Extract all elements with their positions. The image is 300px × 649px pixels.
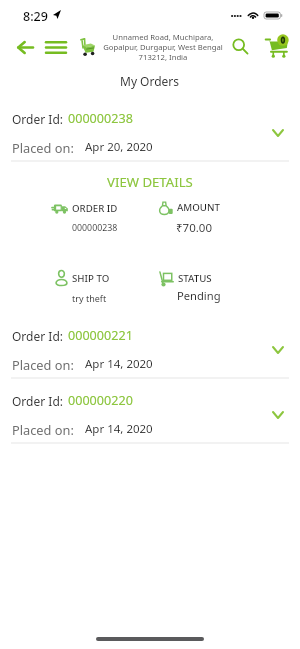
staticText: Apr 20, 2020 [85, 139, 153, 155]
button[interactable]: Unnamed Road, Muchipara, Gopalpur, Durga… [101, 32, 225, 62]
staticText: Apr 14, 2020 [85, 356, 153, 372]
staticText: 000000221 [68, 327, 133, 344]
staticText: Pending [177, 288, 221, 303]
staticText: 000000238 [68, 110, 133, 127]
staticText: Placed on: [12, 356, 74, 373]
staticText: AMOUNT [177, 201, 220, 214]
staticText: 000000238 [72, 222, 118, 234]
button[interactable]: Cart [261, 31, 291, 61]
button[interactable]: Search [228, 34, 252, 58]
staticText: Placed on: [12, 139, 74, 156]
staticText: STATUS [178, 272, 212, 285]
button[interactable]: VIEW DETAILS [0, 172, 300, 192]
staticText: 000000220 [68, 392, 133, 409]
button[interactable]: Back [12, 34, 38, 60]
staticText: try theft [72, 292, 107, 304]
button[interactable]: Order Id: [0, 108, 300, 156]
button[interactable]: Order Id: [0, 325, 300, 373]
staticText: My Orders [120, 73, 180, 89]
staticText: VIEW DETAILS [107, 173, 193, 191]
staticText: ORDER ID [72, 202, 118, 215]
staticText: Placed on: [12, 421, 74, 438]
staticText: ₹70.00 [176, 220, 212, 236]
staticText: Order Id: [12, 111, 63, 127]
staticText: 8:29 [23, 8, 48, 25]
staticText: Order Id: [12, 393, 63, 409]
staticText: SHIP TO [72, 272, 110, 285]
button[interactable]: Store home [76, 36, 98, 58]
staticText: Unnamed Road, Muchipara, Gopalpur, Durga… [101, 32, 225, 62]
staticText: Apr 14, 2020 [85, 421, 153, 437]
button[interactable]: Order Id: [0, 390, 300, 438]
staticText: Order Id: [12, 328, 63, 344]
button[interactable]: Menu [43, 34, 69, 60]
